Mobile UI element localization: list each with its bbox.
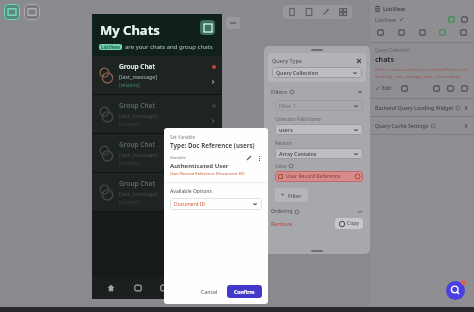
button[interactable]: Calendar [157,281,171,295]
button[interactable]: List [418,28,427,37]
button[interactable]: Edit [246,155,252,161]
staticText: ListView [101,44,120,50]
button[interactable]: Run [4,4,20,20]
button[interactable]: Home [104,281,118,295]
staticText: [relative] [119,199,140,206]
button[interactable]: Filter 1 [275,100,363,111]
staticText: [relative] [119,160,140,167]
button[interactable]: Search help [446,281,465,300]
button[interactable]: Query Collection [272,67,362,78]
button[interactable]: Delete [460,84,469,93]
staticText: Backend Query Loading Widget [375,104,454,111]
staticText: Document ID [174,201,252,208]
staticText: Type: Doc Reference (users) [170,141,255,149]
button[interactable]: Copy component [460,15,469,24]
button[interactable]: Close [356,58,362,64]
button[interactable]: Confirm [227,285,262,298]
button[interactable]: Filters [271,88,363,95]
staticText: are your chats and group chats [125,43,213,51]
staticText: Group Chat [119,179,156,188]
staticText: Available Options [170,188,212,195]
staticText: Array Contains [279,150,353,157]
button[interactable]: + [275,188,308,202]
button[interactable]: Edit [375,85,392,92]
staticText: Group Chat [119,101,156,110]
button[interactable]: Group Chat [92,173,222,211]
button[interactable]: Chats [131,281,145,295]
staticText: Copy [347,220,359,227]
button[interactable]: Backend Query Loading Widget [370,99,474,116]
button[interactable]: New chat [200,20,215,35]
button[interactable]: Document ID [170,198,262,210]
staticText: Authenticated User [170,162,229,170]
staticText: [last_message] [119,190,158,197]
button[interactable]: Theme [447,15,456,24]
button[interactable]: More options [256,155,262,161]
button[interactable]: User Record Reference [275,171,363,182]
staticText: Variable [170,155,246,161]
staticText: My Chats [100,21,160,39]
staticText: Ordering [271,208,293,215]
button[interactable]: Frame [24,4,40,20]
button[interactable]: Sync [397,28,406,37]
staticText: Group Chat [119,62,156,71]
button[interactable]: Remove [271,220,293,227]
staticText: [last_message] [119,151,158,158]
staticText: Cancel [201,288,218,295]
staticText: ListView [383,5,406,12]
staticText: Query Collection [375,47,411,53]
button[interactable]: Group Chat [92,56,222,94]
staticText: [last_message] [119,73,158,80]
button[interactable]: Group Chat [92,134,222,172]
staticText: Order by: last_message_time > Decreasing [375,74,460,80]
staticText: ▴▾ [358,209,363,214]
button[interactable]: Clear [400,84,409,93]
staticText: ListView [375,16,396,23]
staticText: Confirm [234,288,255,295]
staticText: Query Collection [276,69,352,76]
staticText: Filters [271,88,288,95]
button[interactable]: Cancel [196,285,223,298]
staticText: User Record Reference [286,173,355,180]
button[interactable]: Export [459,28,468,37]
staticText: Collection Field Name [275,116,321,122]
button[interactable]: Group Chat [92,95,222,133]
staticText: Query Type [272,57,356,64]
staticText: Query Cache Settings [375,122,429,129]
staticText: Edit [382,85,392,92]
staticText: Set Variable [170,134,195,140]
button[interactable]: Phone preview [287,7,297,17]
button[interactable]: Grid [338,7,348,17]
staticText: [last_message] [119,112,158,119]
button[interactable]: Copy [446,84,455,93]
staticText: Remove [271,220,293,227]
button[interactable]: Duplicate [432,84,441,93]
staticText: + [281,191,285,199]
button[interactable]: Play [438,28,447,37]
staticText: [relative] [119,82,140,89]
staticText: Group Chat [119,140,156,149]
staticText: Relation [275,140,293,146]
staticText: User Record Reference (Document ID) [170,171,245,177]
staticText: Value [275,163,287,169]
button[interactable]: Pointer [321,7,331,17]
button[interactable]: Tablet preview [304,7,314,17]
button[interactable]: Copy [335,218,363,229]
staticText: chats [375,55,394,65]
button[interactable]: Query Cache Settings [370,117,474,134]
staticText: [relative] [119,121,140,128]
staticText: users [279,126,353,133]
staticText: Filter [288,192,302,199]
button[interactable]: More [226,17,240,29]
button[interactable]: Design [376,28,385,37]
button[interactable]: users [275,124,363,135]
staticText: Filters: users:contains (User Record Ref… [375,67,468,73]
staticText: Filter 1 [279,102,353,109]
button[interactable]: Array Contains [275,148,363,159]
